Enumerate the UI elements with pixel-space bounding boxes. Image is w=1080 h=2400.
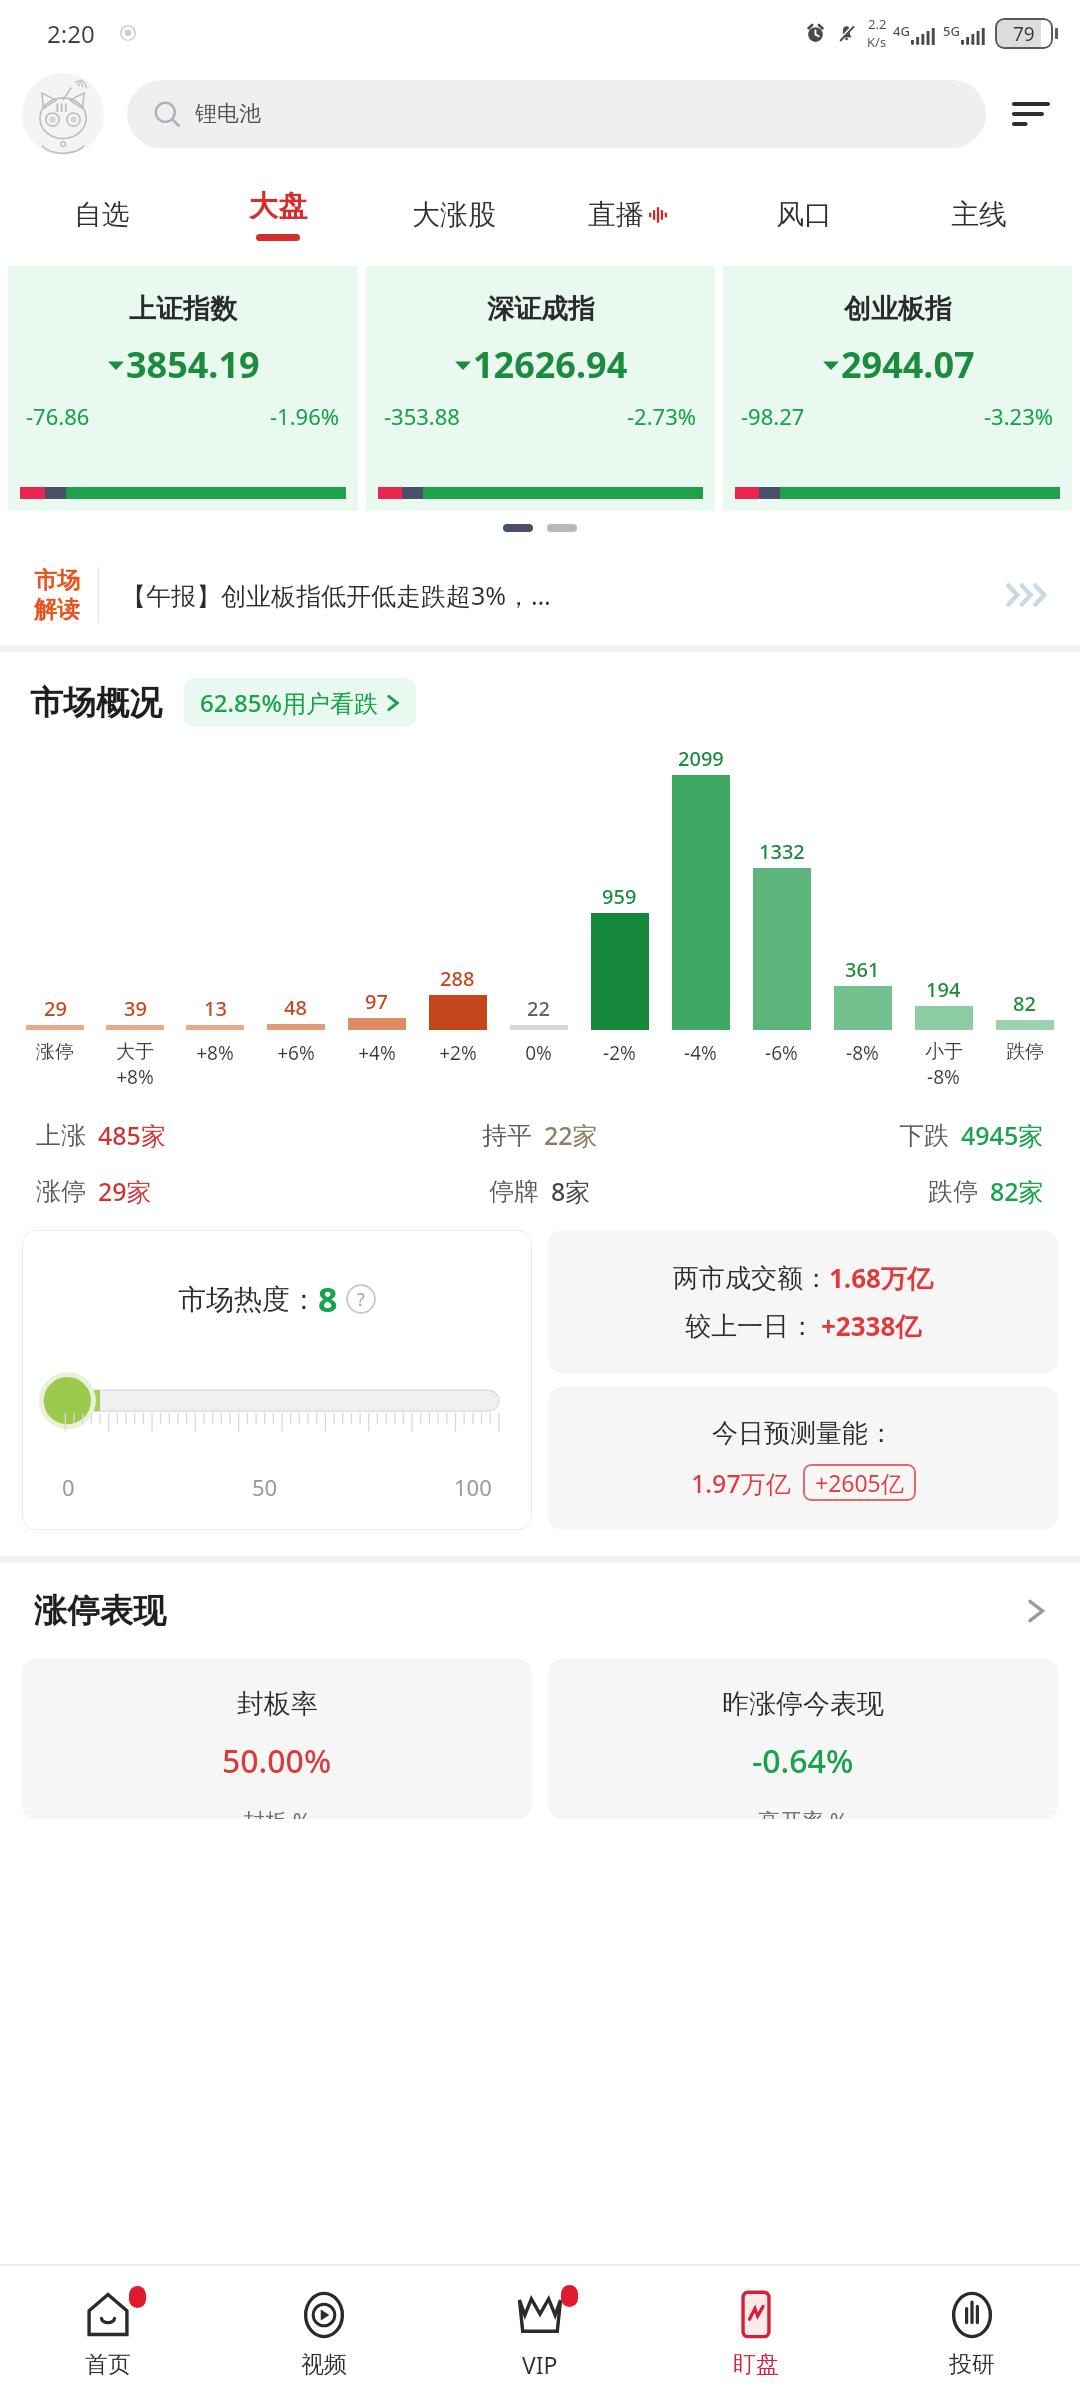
- staticText: 2:20: [47, 17, 95, 50]
- staticText: +8%: [116, 1064, 154, 1090]
- button[interactable]: VIP: [432, 2266, 648, 2400]
- staticText: 市场概况: [30, 682, 162, 724]
- staticText: 1.68万亿: [829, 1260, 933, 1296]
- staticText: +2605亿: [815, 1467, 904, 1498]
- staticText: -3.23%: [984, 401, 1054, 431]
- staticText: 上涨: [36, 1120, 86, 1151]
- staticText: 82家: [990, 1174, 1044, 1208]
- staticText: 0: [62, 1472, 75, 1502]
- staticText: 持平: [482, 1120, 532, 1151]
- staticText: ?: [357, 1287, 365, 1312]
- staticText: 大盘: [249, 188, 307, 225]
- button[interactable]: 盯盘: [648, 2266, 864, 2400]
- staticText: 50: [252, 1472, 278, 1502]
- staticText: 4G: [893, 22, 910, 40]
- staticText: 自选: [74, 197, 130, 232]
- staticText: 直播: [588, 197, 644, 232]
- staticText: 今日预测量能：: [712, 1417, 894, 1450]
- staticText: 停牌: [489, 1176, 539, 1207]
- staticText: 13: [204, 995, 227, 1022]
- staticText: 8家: [551, 1174, 591, 1208]
- button[interactable]: 深证成指: [366, 266, 715, 511]
- staticText: 【午报】创业板指低开低走跌超3%，…: [121, 578, 1000, 612]
- staticText: 创业板指: [844, 292, 952, 326]
- button[interactable]: 市场: [0, 545, 1080, 645]
- staticText: +2338亿: [821, 1308, 922, 1344]
- button[interactable]: 大涨股: [366, 162, 541, 266]
- staticText: 1.97万亿: [691, 1466, 791, 1500]
- button[interactable]: 首页: [0, 2266, 216, 2400]
- staticText: 3854.19: [126, 340, 260, 389]
- staticText: 2099: [678, 745, 724, 772]
- button[interactable]: 自选: [14, 162, 190, 266]
- button[interactable]: 直播: [541, 162, 716, 266]
- staticText: 涨停: [36, 1176, 86, 1207]
- staticText: 361: [845, 956, 880, 983]
- button[interactable]: 主线: [891, 162, 1066, 266]
- staticText: -1.96%: [270, 401, 340, 431]
- staticText: 194: [926, 976, 961, 1003]
- staticText: 4945家: [961, 1118, 1044, 1152]
- staticText: 涨停: [36, 1040, 74, 1064]
- staticText: 投研: [949, 2350, 995, 2379]
- staticText: 22: [527, 995, 550, 1022]
- staticText: 大于: [116, 1040, 154, 1064]
- staticText: 高开率 %: [758, 1805, 849, 1819]
- button[interactable]: 昨涨停今表现: [548, 1659, 1058, 1819]
- staticText: 封板率: [237, 1687, 318, 1721]
- button[interactable]: 大盘: [190, 162, 366, 266]
- button[interactable]: 视频: [216, 2266, 432, 2400]
- staticText: 97: [365, 988, 388, 1015]
- staticText: +8%: [196, 1040, 234, 1066]
- staticText: 485家: [98, 1118, 166, 1152]
- button[interactable]: 上证指数: [8, 266, 358, 511]
- staticText: 62.85%用户看跌: [200, 686, 378, 719]
- staticText: -6%: [765, 1040, 798, 1066]
- staticText: 视频: [301, 2350, 347, 2379]
- button[interactable]: 投研: [864, 2266, 1080, 2400]
- staticText: 2944.07: [841, 340, 975, 389]
- button[interactable]: 锂电池: [127, 80, 986, 148]
- staticText: K/s: [867, 33, 887, 51]
- staticText: -76.86: [26, 401, 90, 431]
- button[interactable]: Help: [346, 1284, 376, 1314]
- button[interactable]: 市场热度：: [22, 1230, 532, 1530]
- staticText: 大涨股: [412, 197, 496, 232]
- button[interactable]: Profile: [22, 73, 104, 155]
- button[interactable]: 今日预测量能：: [548, 1387, 1058, 1530]
- button[interactable]: 两市成交额：: [548, 1230, 1058, 1373]
- staticText: 深证成指: [487, 292, 595, 326]
- staticText: 100: [454, 1472, 492, 1502]
- staticText: 5G: [943, 22, 960, 40]
- staticText: 12626.94: [473, 340, 628, 389]
- staticText: 较上一日：: [685, 1310, 815, 1343]
- staticText: 39: [124, 995, 147, 1022]
- button[interactable]: 创业板指: [723, 266, 1072, 511]
- staticText: 涨停表现: [34, 1590, 166, 1632]
- staticText: +6%: [277, 1040, 315, 1066]
- staticText: -0.64%: [752, 1739, 854, 1783]
- staticText: 48: [284, 994, 307, 1021]
- staticText: 锂电池: [195, 100, 261, 128]
- button[interactable]: Menu: [1004, 87, 1058, 141]
- staticText: 上证指数: [129, 292, 237, 326]
- staticText: VIP: [522, 2349, 558, 2380]
- staticText: -8%: [846, 1040, 879, 1066]
- button[interactable]: 涨停表现: [0, 1563, 1080, 1659]
- staticText: 1332: [759, 838, 805, 865]
- staticText: 盯盘: [733, 2350, 779, 2379]
- staticText: 29: [44, 995, 67, 1022]
- staticText: 0%: [525, 1040, 552, 1066]
- staticText: 首页: [85, 2350, 131, 2379]
- staticText: 22家: [544, 1118, 598, 1152]
- staticText: 79: [1013, 21, 1035, 47]
- staticText: 29家: [98, 1174, 152, 1208]
- staticText: -98.27: [741, 401, 805, 431]
- button[interactable]: 风口: [716, 162, 891, 266]
- staticText: 两市成交额：: [673, 1262, 829, 1295]
- button[interactable]: 封板率: [22, 1659, 532, 1819]
- staticText: 封板 %: [243, 1805, 312, 1819]
- staticText: +4%: [358, 1040, 396, 1066]
- button[interactable]: 62.85%用户看跌: [184, 678, 416, 727]
- staticText: 市场: [34, 566, 80, 595]
